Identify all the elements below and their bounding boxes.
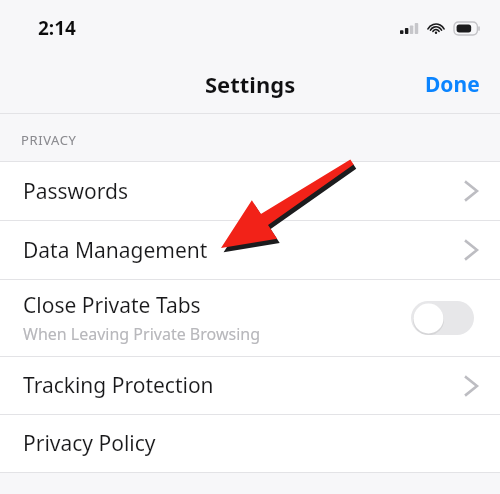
staticText: Settings — [205, 69, 296, 99]
staticText: Data Management — [23, 236, 208, 265]
staticText: Privacy Policy — [23, 429, 156, 458]
button[interactable]: Data Management — [0, 221, 500, 279]
staticText: When Leaving Private Browsing — [23, 323, 260, 345]
button[interactable]: Close Private Tabs toggle, off — [411, 301, 474, 335]
button[interactable]: Privacy Policy — [0, 415, 500, 472]
staticText: Tracking Protection — [23, 371, 214, 400]
button[interactable]: Done — [405, 60, 500, 109]
button[interactable]: Tracking Protection — [0, 357, 500, 414]
staticText: Done — [425, 70, 480, 99]
staticText: PRIVACY — [21, 131, 77, 149]
button[interactable]: Passwords — [0, 162, 500, 220]
staticText: Passwords — [23, 177, 129, 206]
staticText: Close Private Tabs — [23, 291, 201, 320]
staticText: 2:14 — [38, 15, 76, 41]
button[interactable]: Close Private Tabs — [0, 280, 500, 356]
